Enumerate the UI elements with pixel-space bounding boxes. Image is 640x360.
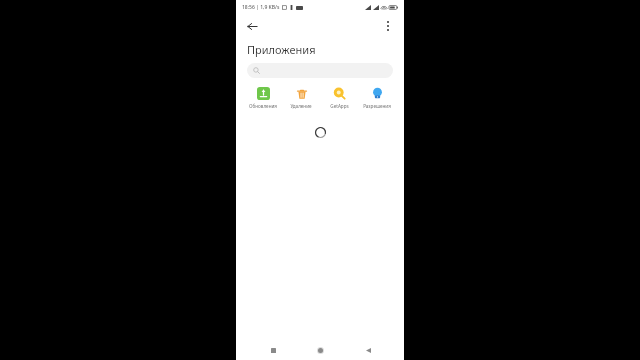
staticText: 18:56 | 1,9 KB/s <box>242 4 280 11</box>
staticText: GetApps <box>330 103 349 109</box>
button[interactable]: Back <box>242 16 262 36</box>
button[interactable] <box>247 63 393 78</box>
button[interactable]: Recent apps <box>262 340 284 360</box>
button[interactable]: Удаление <box>282 85 320 110</box>
staticText: Обновления <box>249 103 277 109</box>
button[interactable]: More options <box>378 16 398 36</box>
button[interactable]: Back <box>357 340 379 360</box>
button[interactable]: GetApps <box>320 85 358 110</box>
button[interactable]: Разрешения <box>358 85 396 110</box>
staticText: Разрешения <box>363 103 391 109</box>
staticText: Удаление <box>290 103 312 109</box>
staticText: Приложения <box>247 42 316 57</box>
button[interactable]: Home <box>309 340 331 360</box>
button[interactable]: Обновления <box>244 85 282 110</box>
